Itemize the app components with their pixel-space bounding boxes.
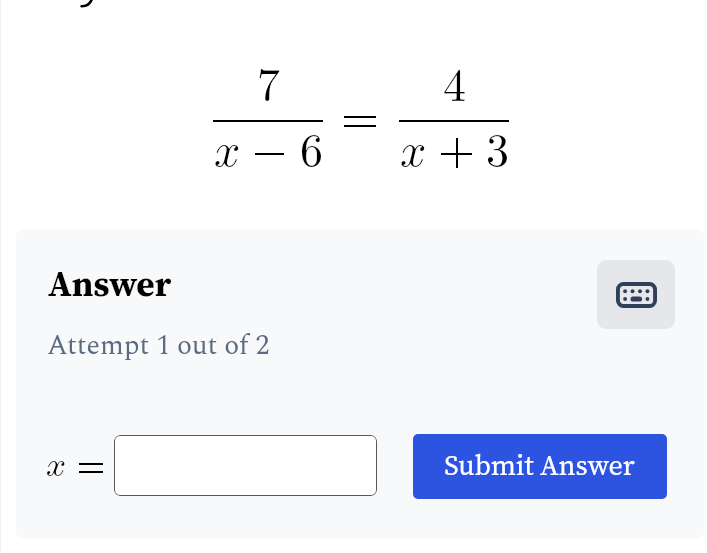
staticText: 𝑥 bbox=[46, 448, 67, 483]
button[interactable]: Submit Answer bbox=[413, 434, 667, 499]
staticText: 6 bbox=[300, 129, 323, 175]
staticText: Submit Answer bbox=[444, 446, 635, 484]
staticText: 4 bbox=[443, 64, 466, 110]
staticText: 7 bbox=[257, 63, 280, 109]
staticText: 𝑥 bbox=[214, 129, 241, 175]
staticText: 3 bbox=[486, 129, 509, 175]
staticText: 𝑥 bbox=[400, 129, 427, 175]
button[interactable] bbox=[114, 435, 377, 496]
staticText: Answer bbox=[48, 259, 172, 307]
staticText: Attempt 1 out of 2 bbox=[47, 325, 270, 367]
button[interactable]: Show keyboard bbox=[597, 260, 675, 329]
